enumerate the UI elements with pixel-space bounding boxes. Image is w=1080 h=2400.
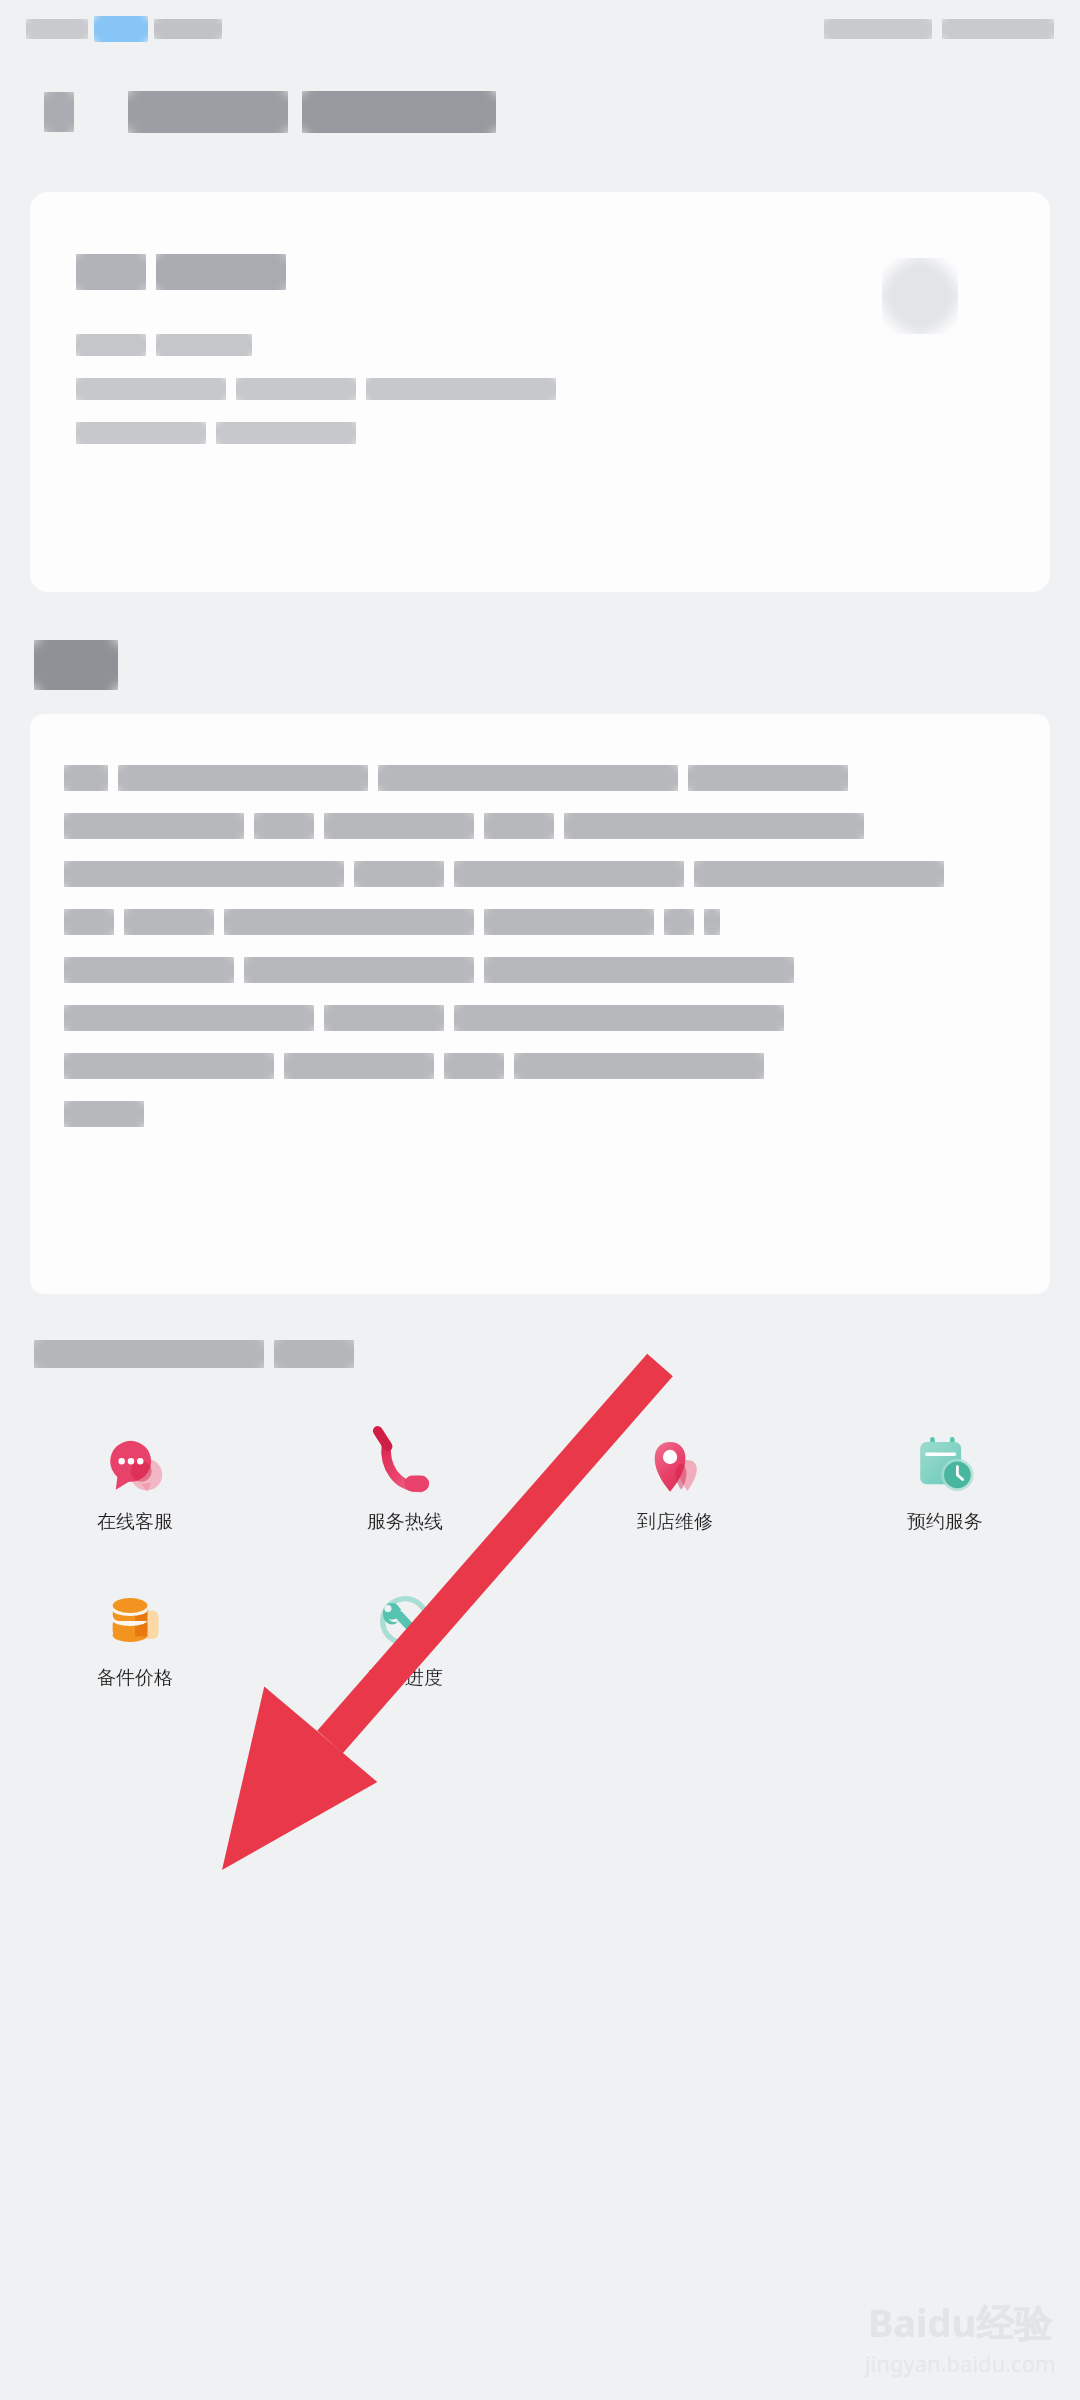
button[interactable]: 备件价格: [0, 1584, 270, 1696]
staticText: jingyan.baidu.com: [865, 2348, 1056, 2378]
button[interactable]: 到店维修: [540, 1428, 810, 1540]
button[interactable]: 在线客服: [0, 1428, 270, 1540]
button[interactable]: 服务热线: [270, 1428, 540, 1540]
staticText: 预约服务: [907, 1510, 983, 1534]
button[interactable]: Back: [44, 92, 74, 132]
staticText: 备件价格: [97, 1666, 173, 1690]
button[interactable]: 预约服务: [810, 1428, 1080, 1540]
staticText: 在线客服: [97, 1510, 173, 1534]
button[interactable]: [30, 192, 1050, 592]
button[interactable]: 服务进度: [270, 1584, 540, 1696]
staticText: 服务进度: [367, 1666, 443, 1690]
staticText: 到店维修: [637, 1510, 713, 1534]
staticText: 服务热线: [367, 1510, 443, 1534]
staticText: Baidu经验: [868, 2296, 1053, 2348]
